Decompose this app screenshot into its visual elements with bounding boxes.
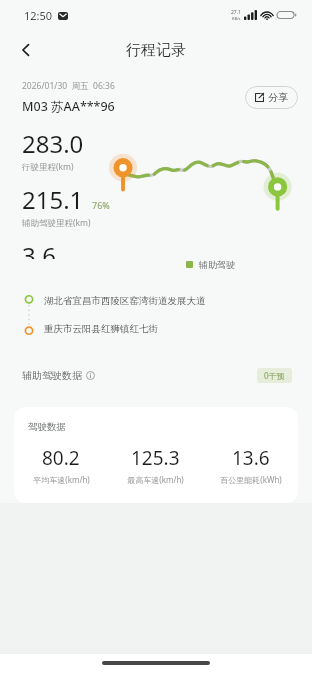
staticText: 辅助驾驶里程(km) (22, 217, 91, 229)
button[interactable]: 分享 (245, 86, 298, 109)
staticText: 辅助驾驶数据 (22, 369, 82, 382)
staticText: 3.6 (22, 239, 56, 259)
staticText: 12:50 (24, 8, 53, 23)
button[interactable]: 湖北省宜昌市西陵区窑湾街道发展大道 (0, 292, 312, 338)
staticText: 辅助驾驶 (199, 259, 235, 270)
staticText: M03 苏AA***96 (22, 98, 115, 115)
staticText: 行程记录 (126, 41, 186, 60)
staticText: 125.3 (131, 445, 180, 471)
staticText: 重庆市云阳县红狮镇红七街 (44, 323, 158, 335)
staticText: 76% (92, 199, 110, 211)
staticText: 平均车速(km/h) (33, 474, 90, 485)
staticText: 驾驶数据 (28, 421, 66, 433)
staticText: 0干预 (264, 370, 285, 381)
staticText: 分享 (268, 91, 288, 104)
button[interactable]: 返回 (8, 32, 44, 68)
button[interactable]: 辅助驾驶数据 (0, 362, 312, 389)
staticText: 283.0 (22, 127, 84, 160)
staticText: 湖北省宜昌市西陵区窑湾街道发展大道 (44, 295, 206, 307)
staticText: 27.1 (231, 9, 241, 16)
staticText: 80.2 (42, 445, 80, 471)
button[interactable]: 驾驶数据 (14, 407, 298, 503)
staticText: 行驶里程(km) (22, 161, 74, 173)
staticText: KB/s (232, 16, 241, 21)
staticText: 百公里能耗(kWh) (220, 474, 282, 485)
staticText: 13.6 (232, 445, 270, 471)
staticText: 最高车速(km/h) (127, 474, 184, 485)
staticText: 215.1 (22, 183, 84, 216)
staticText: 2026/01/30 周五 06:36 (22, 80, 115, 92)
